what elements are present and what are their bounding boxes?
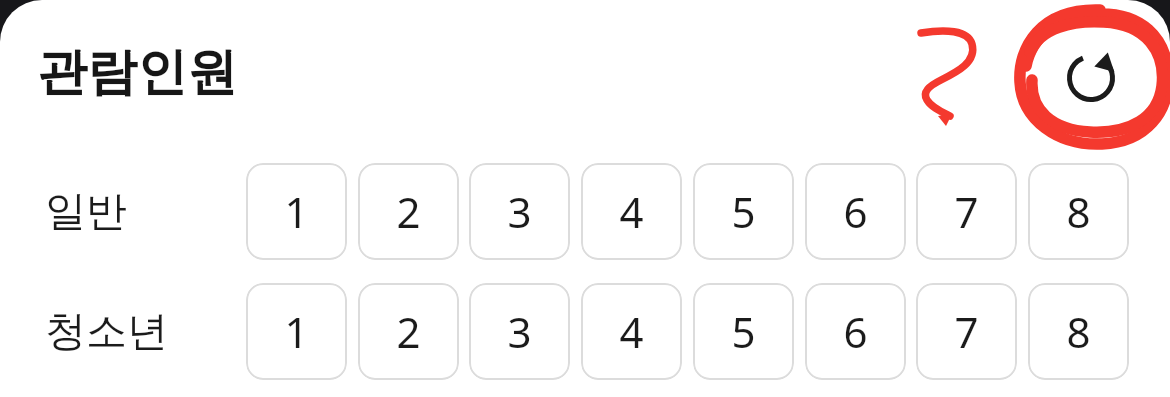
button[interactable]: 3 xyxy=(469,283,570,380)
button[interactable]: 7 xyxy=(916,163,1017,260)
button[interactable]: 새로고침 xyxy=(1057,44,1125,112)
button[interactable]: 7 xyxy=(916,283,1017,380)
button[interactable]: 5 xyxy=(693,163,794,260)
staticText: 4 xyxy=(619,183,644,240)
staticText: 5 xyxy=(731,303,756,360)
staticText: 8 xyxy=(1066,303,1091,360)
staticText: 7 xyxy=(954,303,979,360)
staticText: 6 xyxy=(843,303,868,360)
staticText: 3 xyxy=(507,183,532,240)
staticText: 관람인원 xyxy=(37,41,237,104)
staticText: 4 xyxy=(619,303,644,360)
staticText: 2 xyxy=(396,183,421,240)
staticText: 5 xyxy=(731,183,756,240)
button[interactable]: 1 xyxy=(246,283,347,380)
staticText: 3 xyxy=(507,303,532,360)
staticText: 1 xyxy=(284,183,309,240)
staticText: 6 xyxy=(843,183,868,240)
staticText: 청소년 xyxy=(45,306,168,358)
staticText: 일반 xyxy=(45,186,127,238)
staticText: 1 xyxy=(284,303,309,360)
button[interactable]: 4 xyxy=(581,283,682,380)
staticText: 2 xyxy=(396,303,421,360)
button[interactable]: 1 xyxy=(246,163,347,260)
button[interactable]: 6 xyxy=(805,163,906,260)
button[interactable]: 8 xyxy=(1028,163,1129,260)
button[interactable]: 6 xyxy=(805,283,906,380)
button[interactable]: 8 xyxy=(1028,283,1129,380)
staticText: 8 xyxy=(1066,183,1091,240)
button[interactable]: 2 xyxy=(358,283,459,380)
button[interactable]: 3 xyxy=(469,163,570,260)
staticText: 7 xyxy=(954,183,979,240)
button[interactable]: 2 xyxy=(358,163,459,260)
button[interactable]: 5 xyxy=(693,283,794,380)
button[interactable]: 4 xyxy=(581,163,682,260)
